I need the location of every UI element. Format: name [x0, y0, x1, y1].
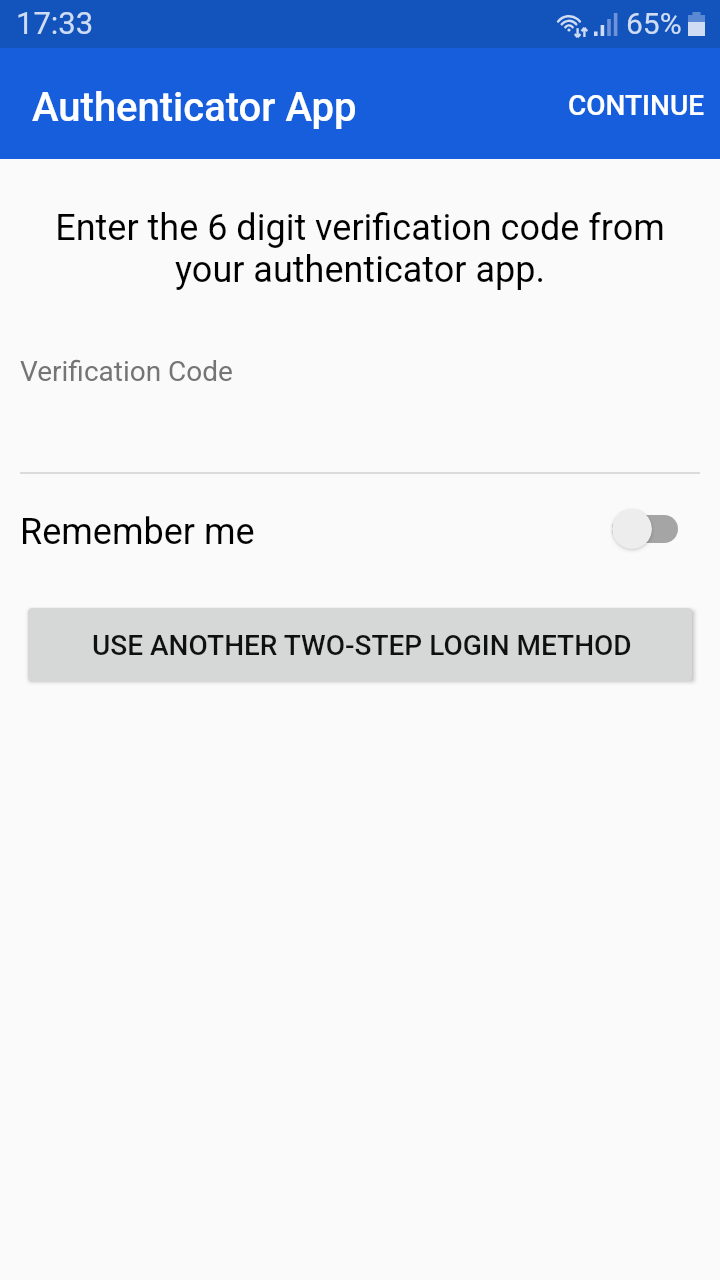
- button[interactable]: Remember me toggle: [612, 507, 678, 551]
- button[interactable]: Verification Code: [0, 339, 720, 474]
- button[interactable]: Remember me: [0, 494, 720, 570]
- staticText: 65%: [626, 6, 682, 41]
- staticText: USE ANOTHER TWO-STEP LOGIN METHOD: [92, 629, 632, 662]
- staticText: Remember me: [20, 511, 255, 553]
- staticText: Verification Code: [20, 355, 233, 388]
- staticText: 17:33: [16, 5, 94, 41]
- staticText: Enter the 6 digit verification code from…: [30, 207, 690, 291]
- staticText: CONTINUE: [568, 89, 705, 122]
- staticText: Authenticator App: [32, 84, 357, 131]
- button[interactable]: USE ANOTHER TWO-STEP LOGIN METHOD: [28, 608, 692, 681]
- button[interactable]: CONTINUE: [549, 48, 720, 159]
